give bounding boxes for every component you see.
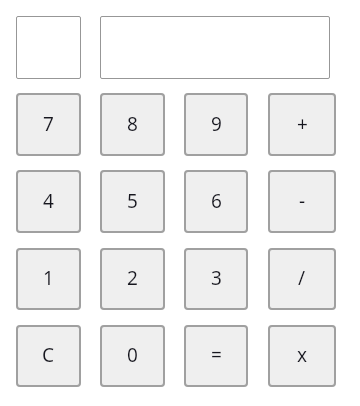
staticText: 3: [211, 265, 222, 291]
button[interactable]: 0: [100, 325, 165, 387]
button[interactable]: 7: [16, 93, 81, 156]
button[interactable]: 4: [16, 170, 81, 233]
staticText: 2: [127, 265, 138, 291]
staticText: 1: [43, 265, 54, 291]
button[interactable]: 8: [100, 93, 165, 156]
button[interactable]: 9: [184, 93, 248, 156]
staticText: 4: [43, 188, 54, 214]
staticText: 0: [127, 342, 138, 368]
staticText: x: [297, 342, 308, 368]
staticText: +: [297, 111, 308, 137]
button[interactable]: -: [268, 170, 336, 233]
button[interactable]: [100, 16, 330, 79]
staticText: 5: [127, 188, 138, 214]
button[interactable]: /: [268, 248, 336, 310]
staticText: 7: [43, 111, 54, 137]
staticText: =: [211, 342, 222, 368]
button[interactable]: C: [16, 325, 81, 387]
staticText: 6: [211, 188, 222, 214]
staticText: /: [298, 265, 306, 291]
button[interactable]: [16, 16, 81, 79]
button[interactable]: =: [184, 325, 248, 387]
button[interactable]: 1: [16, 248, 81, 310]
button[interactable]: +: [268, 93, 336, 156]
button[interactable]: 3: [184, 248, 248, 310]
button[interactable]: x: [268, 325, 336, 387]
staticText: 8: [127, 111, 138, 137]
button[interactable]: 2: [100, 248, 165, 310]
staticText: -: [299, 188, 306, 214]
button[interactable]: 5: [100, 170, 165, 233]
button[interactable]: 6: [184, 170, 248, 233]
staticText: C: [42, 342, 55, 368]
staticText: 9: [211, 111, 222, 137]
